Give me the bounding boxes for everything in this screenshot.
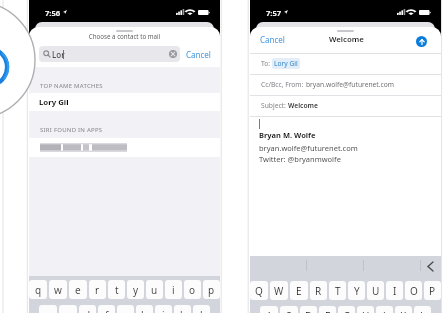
button[interactable]: j xyxy=(155,305,172,313)
staticText: Q xyxy=(255,284,263,298)
button[interactable]: I xyxy=(386,281,403,300)
button[interactable]: To: xyxy=(261,53,441,74)
button[interactable]: Subject: xyxy=(261,95,441,116)
staticText: p xyxy=(208,283,215,297)
button[interactable]: e xyxy=(69,280,87,299)
staticText: F xyxy=(325,309,331,313)
button[interactable]: u xyxy=(146,280,163,299)
staticText: Y xyxy=(354,284,360,298)
button[interactable]: s xyxy=(59,305,77,313)
staticText: K xyxy=(400,309,407,313)
button[interactable]: Lory Gil xyxy=(29,93,220,111)
staticText: T xyxy=(335,284,341,298)
button[interactable]: Clear search text xyxy=(169,50,177,58)
staticText: l xyxy=(200,308,203,313)
button[interactable]: i xyxy=(165,280,182,299)
staticText: 7:57 xyxy=(266,8,282,18)
button[interactable]: F xyxy=(319,306,336,313)
staticText: r xyxy=(95,283,100,297)
staticText: Choose a contact to mail xyxy=(29,32,220,40)
button[interactable]: k xyxy=(174,305,191,313)
staticText: D xyxy=(305,309,313,313)
staticText: Lory Gil xyxy=(39,97,69,108)
staticText: 7:56 xyxy=(45,8,61,18)
staticText: k xyxy=(180,308,186,313)
staticText: U xyxy=(372,284,380,298)
button[interactable]: p xyxy=(203,280,220,299)
button[interactable]: g xyxy=(117,305,134,313)
button[interactable]: Lor xyxy=(39,46,180,62)
button[interactable]: f xyxy=(98,305,115,313)
staticText: Twitter: @bryanmwolfe xyxy=(259,154,341,164)
staticText: To: xyxy=(261,59,272,68)
button[interactable]: Cancel xyxy=(186,46,211,62)
staticText: Welcome xyxy=(329,34,364,45)
button[interactable]: J xyxy=(376,306,393,313)
staticText: o xyxy=(189,283,196,297)
staticText: bryan.wolfe@futurenet.com xyxy=(306,80,395,89)
button[interactable]: S xyxy=(280,306,298,313)
staticText: Lory Gil xyxy=(274,59,298,68)
staticText: d xyxy=(84,308,91,313)
button[interactable]: t xyxy=(108,280,125,299)
button[interactable]: y xyxy=(127,280,144,299)
button[interactable]: Q xyxy=(250,281,268,300)
button[interactable]: d xyxy=(79,305,96,313)
staticText: P xyxy=(429,284,436,298)
button[interactable]: Expand predictions xyxy=(421,256,441,275)
button[interactable]: Cancel xyxy=(260,34,285,45)
button[interactable]: O xyxy=(405,281,422,300)
staticText: Cancel xyxy=(260,34,285,45)
staticText: J xyxy=(383,309,386,313)
button[interactable]: T xyxy=(329,281,346,300)
staticText: w xyxy=(54,283,62,297)
staticText: S xyxy=(286,309,292,313)
button[interactable]: K xyxy=(395,306,412,313)
staticText: TOP NAME MATCHES xyxy=(40,82,103,90)
button[interactable]: W xyxy=(270,281,288,300)
staticText: Subject: xyxy=(261,101,288,110)
staticText: I xyxy=(393,284,397,298)
staticText: h xyxy=(141,308,148,313)
staticText: Lor xyxy=(52,49,65,60)
button[interactable]: G xyxy=(338,306,355,313)
button[interactable]: Send xyxy=(416,36,427,47)
button[interactable]: h xyxy=(136,305,153,313)
button[interactable]: Cc/Bcc, From: xyxy=(261,74,441,95)
button[interactable]: H xyxy=(357,306,374,313)
button[interactable]: P xyxy=(424,281,441,300)
button[interactable]: l xyxy=(193,305,210,313)
staticText: t xyxy=(115,283,119,297)
button[interactable]: a xyxy=(39,305,57,313)
button[interactable]: R xyxy=(310,281,327,300)
button[interactable]: o xyxy=(184,280,201,299)
button[interactable] xyxy=(29,138,220,157)
staticText: SIRI FOUND IN APPS xyxy=(40,126,103,134)
button[interactable]: L xyxy=(414,306,431,313)
staticText: O xyxy=(410,284,418,298)
button[interactable]: w xyxy=(49,280,67,299)
staticText: u xyxy=(151,283,158,297)
staticText: bryan.wolfe@futurenet.com xyxy=(259,143,358,153)
button[interactable]: D xyxy=(300,306,317,313)
button[interactable]: E xyxy=(290,281,308,300)
staticText: y xyxy=(133,283,139,297)
button[interactable]: A xyxy=(260,306,278,313)
staticText: f xyxy=(105,308,109,313)
staticText: Bryan M. Wolfe xyxy=(259,130,316,140)
button[interactable]: r xyxy=(89,280,106,299)
staticText: i xyxy=(172,283,175,297)
button[interactable]: Y xyxy=(348,281,365,300)
staticText: G xyxy=(343,309,351,313)
staticText: E xyxy=(296,284,302,298)
staticText: H xyxy=(362,309,370,313)
staticText: Cancel xyxy=(186,49,211,60)
button[interactable]: U xyxy=(367,281,384,300)
staticText: j xyxy=(162,308,165,313)
button[interactable]: q xyxy=(29,280,47,299)
